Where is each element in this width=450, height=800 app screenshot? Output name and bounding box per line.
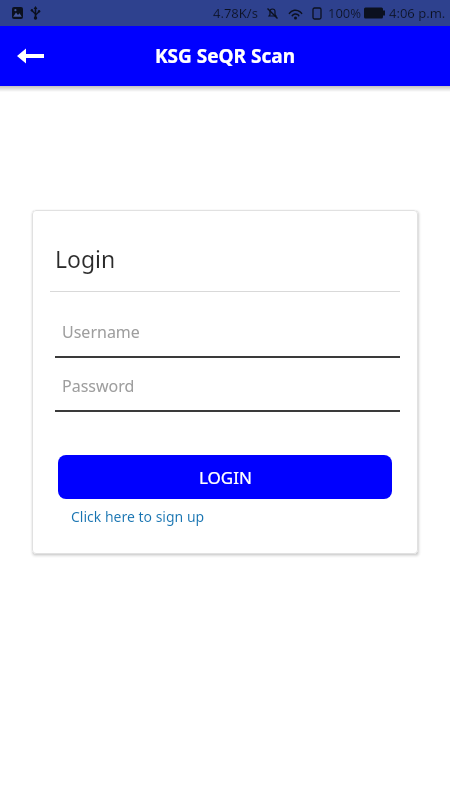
staticText: 4:06 p.m. bbox=[389, 4, 446, 22]
staticText: 4.78K/s bbox=[213, 4, 258, 22]
button[interactable] bbox=[8, 34, 52, 78]
button[interactable]: Password bbox=[55, 364, 400, 412]
button[interactable]: Username bbox=[55, 310, 400, 358]
staticText: LOGIN bbox=[199, 466, 252, 489]
staticText: Password bbox=[62, 375, 135, 397]
staticText: KSG SeQR Scan bbox=[155, 43, 296, 69]
button[interactable]: LOGIN bbox=[58, 455, 392, 499]
button[interactable]: Click here to sign up bbox=[64, 502, 212, 531]
staticText: 100% bbox=[328, 4, 362, 22]
staticText: Username bbox=[62, 321, 140, 343]
staticText: Login bbox=[55, 243, 116, 274]
staticText: Click here to sign up bbox=[71, 507, 205, 526]
